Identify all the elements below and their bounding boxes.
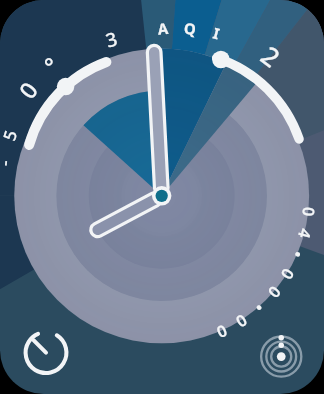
other: Analog watch face: [0, 0, 324, 394]
button[interactable]: Analog watch face: [0, 0, 324, 394]
